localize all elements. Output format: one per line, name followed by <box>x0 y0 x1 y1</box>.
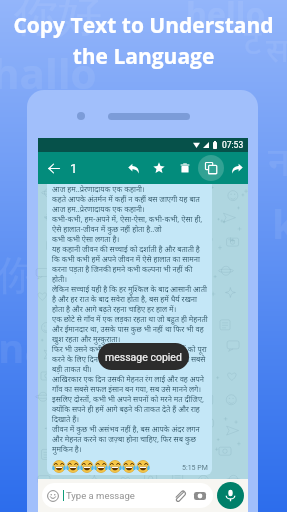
staticText: 07:53 <box>222 140 244 150</box>
button[interactable]: message copied <box>98 343 189 370</box>
staticText: आज हम..प्रेरणादायक एक कहानी। कहते आपके अ… <box>52 185 209 455</box>
button[interactable]: Forward <box>224 155 250 181</box>
button[interactable]: Reply <box>120 155 146 181</box>
button[interactable]: Back <box>38 152 86 184</box>
button[interactable]: Attach <box>174 490 186 502</box>
staticText: 你 <box>0 250 36 300</box>
staticText: 1 <box>70 161 78 176</box>
staticText: na <box>0 320 49 374</box>
staticText: message copied <box>105 351 182 363</box>
other: Back <box>48 163 60 174</box>
staticText: hello <box>186 0 266 36</box>
staticText: न <box>268 140 287 192</box>
staticText: ट <box>244 24 262 68</box>
staticText: hallo <box>0 44 97 101</box>
button[interactable]: Copy <box>198 155 224 181</box>
staticText: स <box>266 32 287 76</box>
staticText: Type a message <box>66 490 135 501</box>
button[interactable]: Camera <box>194 490 206 502</box>
button[interactable]: Star <box>146 155 172 181</box>
staticText: 5:15 PM <box>182 464 208 472</box>
button[interactable]: Delete <box>172 155 198 181</box>
staticText: Copy Text to Understand the Language <box>13 11 274 70</box>
button[interactable]: Type a message <box>42 483 213 508</box>
button[interactable]: Voice message <box>217 482 244 509</box>
staticText: k <box>272 196 287 250</box>
staticText: 你好 <box>14 0 102 43</box>
